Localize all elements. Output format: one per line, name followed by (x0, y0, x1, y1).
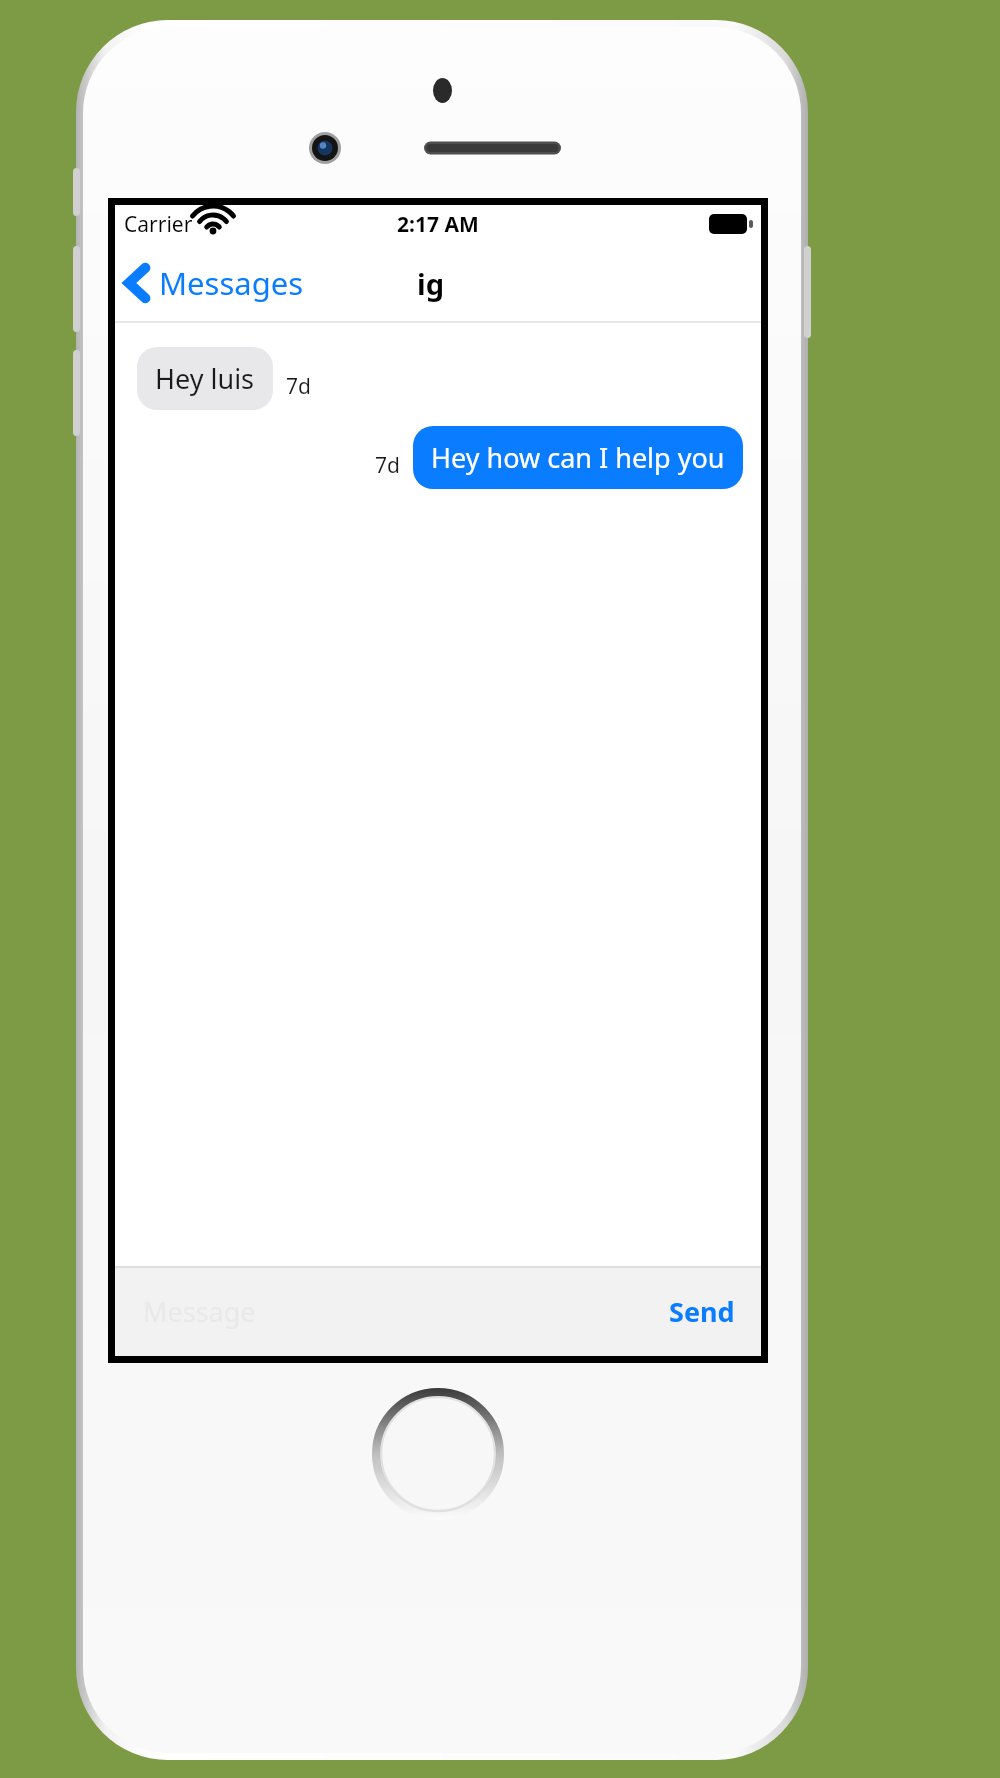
staticText: Hey how can I help you (431, 439, 725, 476)
button[interactable]: Send (661, 1283, 743, 1340)
button[interactable]: Messages (115, 254, 316, 312)
staticText: Messages (159, 262, 304, 304)
button[interactable]: Home (372, 1388, 504, 1520)
button[interactable]: Hey how can I help you (413, 426, 743, 489)
staticText: Carrier (124, 210, 193, 239)
staticText: 7d (375, 451, 400, 480)
staticText: Send (669, 1293, 735, 1330)
staticText: ig (417, 264, 444, 303)
staticText: Hey luis (155, 360, 255, 397)
button[interactable]: Hey luis (137, 347, 273, 410)
staticText: Message (143, 1293, 256, 1330)
staticText: 2:17 AM (397, 210, 479, 239)
staticText: 7d (286, 372, 311, 401)
